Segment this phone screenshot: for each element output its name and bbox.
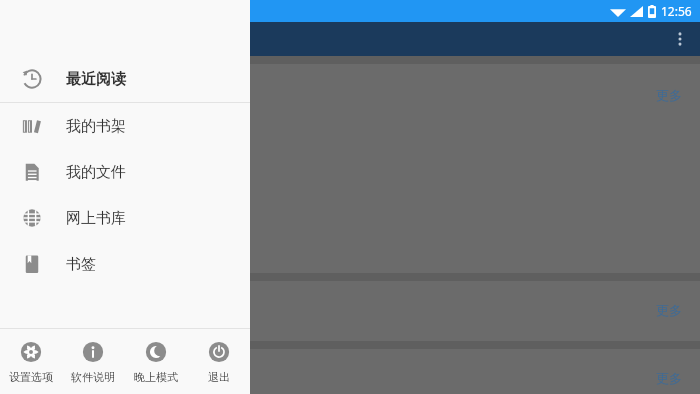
button[interactable]: 更多 xyxy=(654,300,684,320)
button[interactable]: More options xyxy=(660,22,700,56)
button[interactable]: 更多 xyxy=(654,368,684,388)
staticText: 最近阅读 xyxy=(66,70,126,89)
button[interactable]: 我的书架 xyxy=(0,103,250,149)
button[interactable]: 网上书库 xyxy=(0,195,250,241)
button[interactable]: 退出 xyxy=(187,329,250,394)
staticText: 12:56 xyxy=(661,3,692,19)
staticText: 更多 xyxy=(656,87,682,103)
staticText: 设置选项 xyxy=(9,370,53,384)
staticText: 软件说明 xyxy=(71,370,115,384)
button[interactable]: 我的文件 xyxy=(0,149,250,195)
staticText: 退出 xyxy=(208,370,230,384)
button[interactable]: 设置选项 xyxy=(0,329,62,394)
staticText: 书签 xyxy=(66,255,96,274)
staticText: 我的书架 xyxy=(66,117,126,136)
button[interactable]: 软件说明 xyxy=(62,329,124,394)
staticText: 更多 xyxy=(656,370,682,386)
staticText: 我的文件 xyxy=(66,163,126,182)
button[interactable]: 晚上模式 xyxy=(124,329,187,394)
staticText: 网上书库 xyxy=(66,209,126,228)
button[interactable]: 书签 xyxy=(0,241,250,287)
button[interactable]: 更多 xyxy=(654,85,684,105)
staticText: 更多 xyxy=(656,302,682,318)
staticText: 晚上模式 xyxy=(134,370,178,384)
button[interactable]: 最近阅读 xyxy=(0,56,250,102)
